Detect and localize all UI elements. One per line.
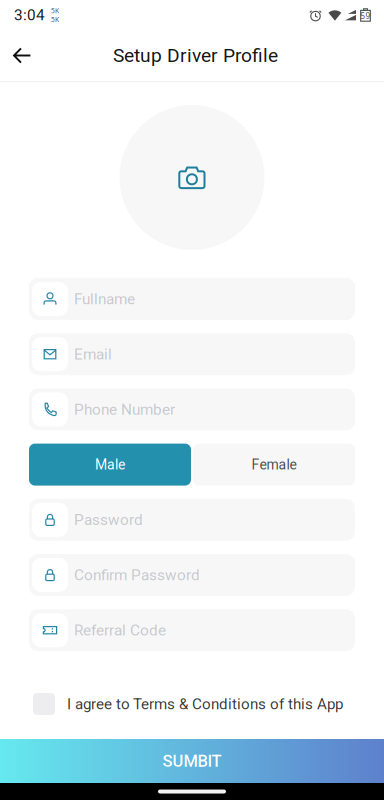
- staticText: Password: [74, 511, 143, 529]
- staticText: 5K 5K: [51, 6, 59, 24]
- button[interactable]: Add profile photo: [119, 105, 264, 250]
- staticText: Fullname: [74, 290, 135, 308]
- staticText: Phone Number: [74, 400, 175, 418]
- button[interactable]: Phone Number: [29, 388, 355, 430]
- staticText: Referral Code: [74, 621, 166, 639]
- staticText: 59: [360, 11, 370, 21]
- staticText: Setup Driver Profile: [113, 44, 278, 67]
- button[interactable]: Password: [29, 499, 355, 541]
- button[interactable]: Email: [29, 333, 355, 375]
- button[interactable]: Female: [193, 444, 355, 486]
- button[interactable]: Confirm Password: [29, 554, 355, 596]
- staticText: I agree to Terms & Conditions of this Ap…: [67, 695, 343, 713]
- staticText: Female: [251, 456, 296, 473]
- button[interactable]: Referral Code: [29, 609, 355, 651]
- staticText: Email: [74, 345, 112, 363]
- staticText: 3:04: [14, 6, 45, 24]
- button[interactable]: Back: [0, 35, 44, 76]
- staticText: SUMBIT: [162, 751, 221, 771]
- staticText: Confirm Password: [74, 566, 200, 584]
- button[interactable]: Fullname: [29, 278, 355, 320]
- button[interactable]: Male: [29, 444, 191, 486]
- button[interactable]: I agree to Terms & Conditions of this Ap…: [0, 693, 384, 715]
- button[interactable]: SUMBIT: [0, 739, 384, 783]
- staticText: Male: [95, 456, 125, 473]
